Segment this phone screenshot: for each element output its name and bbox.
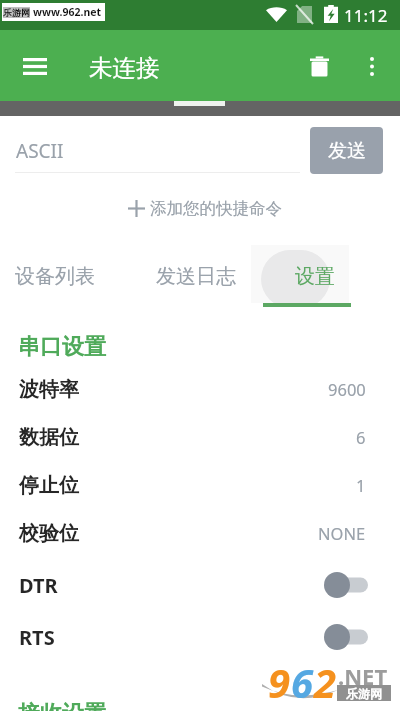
button[interactable]: DTR [0,560,400,610]
button[interactable]: 设备列表 [0,249,110,303]
staticText: 停止位 [19,473,79,498]
button[interactable]: 添加您的快捷命令 [128,186,282,230]
button[interactable]: 校验位 [0,510,400,556]
staticText: 6 [356,426,366,448]
staticText: 接收设置 [18,700,106,711]
button[interactable]: 发送日志 [143,249,248,303]
staticText: 未连接 [89,53,160,83]
staticText: 校验位 [19,521,79,546]
staticText: 波特率 [19,377,79,402]
staticText: www.962.net [33,5,102,19]
button[interactable]: 数据位 [0,414,400,460]
staticText: 添加您的快捷命令 [150,198,282,219]
staticText: 乐游网 [346,686,382,701]
staticText: 乐游网 [3,7,30,18]
button[interactable]: 停止位 [0,462,400,508]
staticText: RTS [19,624,55,651]
staticText: 设备列表 [15,264,95,289]
staticText: 9600 [328,378,366,400]
button[interactable]: 波特率 [0,366,400,412]
button[interactable]: Menu [11,42,59,90]
staticText: 串口设置 [18,333,106,361]
staticText: DTR [19,572,58,599]
staticText: 数据位 [19,425,79,450]
staticText: 11:12 [344,4,388,27]
button[interactable]: More options [348,42,396,90]
staticText: 设置 [295,264,335,289]
staticText: .NET [338,661,388,691]
staticText: 2 [314,655,337,709]
staticText: 发送日志 [156,264,236,289]
staticText: NONE [318,522,366,544]
staticText: 1 [356,474,366,496]
button[interactable]: 设置 [271,249,359,303]
staticText: 发送 [328,139,366,163]
staticText: ASCII [16,138,64,164]
button[interactable]: 发送 [310,127,383,174]
button[interactable]: Delete [295,42,343,90]
staticText: 9 [268,655,291,709]
staticText: 6 [291,655,314,709]
button[interactable]: RTS [0,612,400,662]
